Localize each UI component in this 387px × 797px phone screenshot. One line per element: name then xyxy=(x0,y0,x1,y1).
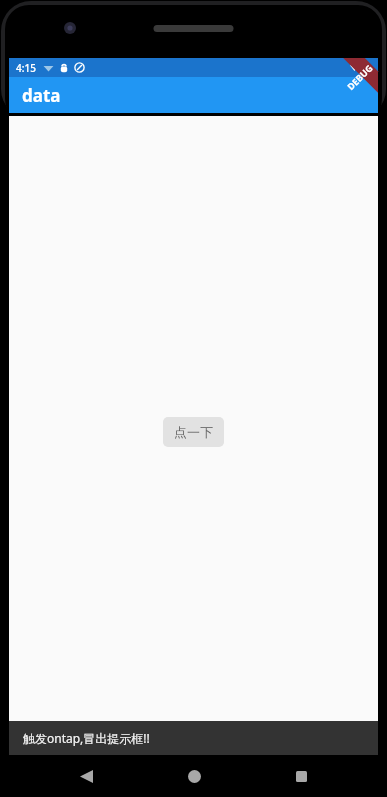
button[interactable]: Home xyxy=(172,755,216,797)
button[interactable]: Recent apps xyxy=(279,755,323,797)
staticText: 点一下 xyxy=(174,424,213,440)
staticText: DEBUG xyxy=(344,62,375,92)
staticText: 触发ontap,冒出提示框!! xyxy=(23,730,150,746)
staticText: 4:15 xyxy=(16,61,36,75)
button[interactable]: 点一下 xyxy=(163,417,224,447)
staticText: data xyxy=(22,84,61,107)
button[interactable]: Back xyxy=(64,755,108,797)
